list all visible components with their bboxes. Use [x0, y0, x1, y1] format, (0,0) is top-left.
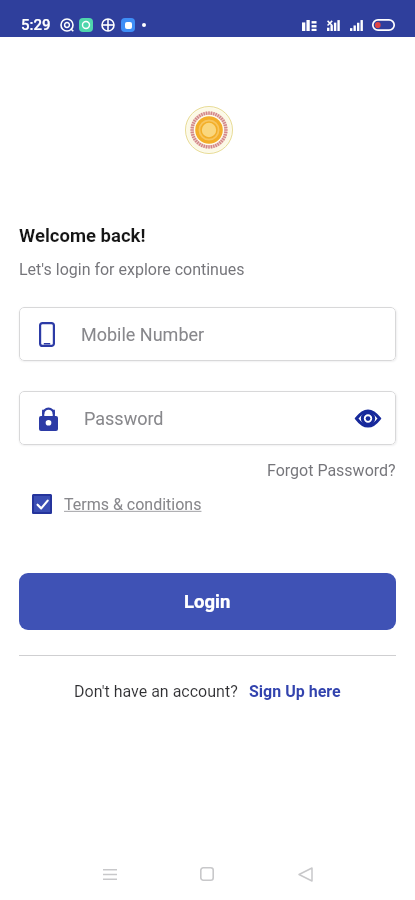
- button[interactable]: Back: [280, 849, 330, 899]
- staticText: Password: [84, 408, 164, 429]
- staticText: 5:29: [21, 16, 51, 34]
- staticText: Don't have an account?: [74, 682, 238, 701]
- button[interactable]: Login: [19, 573, 396, 630]
- staticText: Sign Up here: [249, 682, 341, 701]
- button[interactable]: Terms & conditions: [32, 494, 202, 514]
- button[interactable]: Show password: [355, 405, 381, 431]
- staticText: Let's login for explore continues: [19, 260, 245, 279]
- button[interactable]: Sign Up here: [249, 682, 341, 701]
- button[interactable]: Forgot Password?: [267, 461, 396, 480]
- staticText: Login: [184, 591, 231, 613]
- button[interactable]: Home: [182, 849, 232, 899]
- staticText: Welcome back!: [19, 225, 146, 247]
- staticText: Mobile Number: [81, 324, 205, 345]
- staticText: Terms & conditions: [64, 495, 202, 514]
- button[interactable]: Recents: [85, 849, 135, 899]
- staticText: Forgot Password?: [267, 461, 396, 480]
- button[interactable]: Mobile Number: [19, 307, 396, 361]
- button[interactable]: Password: [19, 391, 396, 445]
